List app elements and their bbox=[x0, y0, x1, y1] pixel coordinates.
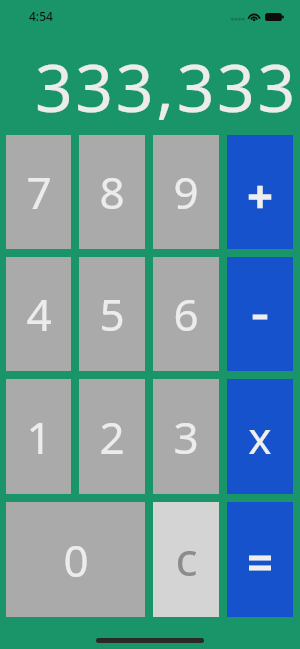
staticText: 1 bbox=[26, 407, 52, 467]
staticText: 8 bbox=[99, 162, 125, 222]
staticText: 2 bbox=[99, 407, 125, 467]
staticText: x bbox=[248, 407, 272, 467]
button[interactable]: two bbox=[79, 379, 145, 494]
button[interactable]: eight bbox=[79, 135, 145, 249]
staticText: 3 bbox=[173, 407, 199, 467]
button[interactable]: Plus bbox=[227, 135, 293, 249]
staticText: c bbox=[175, 527, 198, 590]
button[interactable]: three bbox=[153, 379, 219, 494]
staticText: 5 bbox=[99, 284, 125, 344]
staticText: 9 bbox=[173, 162, 199, 222]
button[interactable]: seven bbox=[6, 135, 71, 249]
button[interactable]: one bbox=[6, 379, 71, 494]
staticText: 0 bbox=[63, 530, 89, 590]
staticText: 4:54 bbox=[29, 8, 53, 24]
button[interactable]: zero bbox=[6, 502, 145, 617]
button[interactable]: times bbox=[227, 379, 293, 494]
button[interactable]: five bbox=[79, 257, 145, 371]
button[interactable]: four bbox=[6, 257, 71, 371]
staticText: 7 bbox=[26, 162, 52, 222]
staticText: 4 bbox=[26, 284, 52, 344]
button[interactable]: clear bbox=[153, 502, 219, 617]
button[interactable]: Minus bbox=[227, 257, 293, 371]
button[interactable]: nine bbox=[153, 135, 219, 249]
staticText: 6 bbox=[173, 284, 199, 344]
button[interactable]: Equals bbox=[227, 502, 293, 617]
button[interactable]: six bbox=[153, 257, 219, 371]
staticText: 333,333 bbox=[0, 41, 298, 131]
